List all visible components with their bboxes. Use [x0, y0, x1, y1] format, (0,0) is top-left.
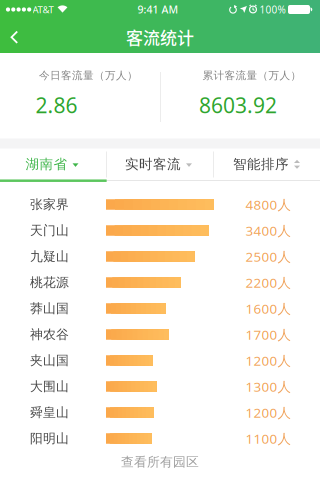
button[interactable]: 阳明山 [0, 425, 320, 451]
staticText: 4800人 [245, 195, 290, 214]
button[interactable]: 天门山 [0, 217, 320, 243]
staticText: 1300人 [245, 377, 290, 396]
button[interactable]: 大围山 [0, 373, 320, 399]
staticText: 2.86 [35, 91, 77, 119]
staticText: 阳明山 [30, 430, 69, 446]
staticText: 9:41 AM [137, 2, 178, 17]
staticText: 3400人 [245, 221, 290, 240]
button[interactable]: 桃花源 [0, 269, 320, 295]
button[interactable]: 湖南省 [0, 148, 105, 180]
button[interactable]: 舜皇山 [0, 399, 320, 425]
staticText: 1200人 [245, 351, 290, 370]
staticText: 2200人 [245, 273, 290, 292]
staticText: 神农谷 [30, 326, 69, 342]
staticText: 莽山国 [30, 300, 69, 316]
staticText: 1700人 [245, 325, 290, 344]
staticText: 九疑山 [30, 248, 69, 264]
button[interactable] [2, 29, 30, 45]
button[interactable]: 查看所有园区 [0, 450, 320, 474]
staticText: 夹山国 [30, 352, 69, 368]
staticText: 实时客流 [125, 156, 181, 173]
staticText: 天门山 [30, 222, 69, 238]
staticText: 1200人 [245, 403, 290, 422]
staticText: 1600人 [245, 299, 290, 318]
button[interactable]: 张家界 [0, 191, 320, 217]
button[interactable]: 实时客流 [105, 148, 211, 180]
staticText: 查看所有园区 [121, 454, 199, 470]
button[interactable]: 九疑山 [0, 243, 320, 269]
staticText: 100% [259, 3, 285, 16]
staticText: 张家界 [30, 196, 69, 212]
staticText: 今日客流量（万人） [39, 69, 138, 82]
staticText: 智能排序 [233, 156, 289, 173]
button[interactable]: 智能排序 [213, 148, 319, 180]
staticText: 湖南省 [25, 156, 67, 173]
staticText: 累计客流量（万人） [202, 69, 301, 82]
staticText: 客流统计 [126, 25, 194, 49]
staticText: 1100人 [245, 429, 290, 448]
staticText: 8603.92 [199, 91, 277, 119]
staticText: 2500人 [245, 247, 290, 266]
button[interactable]: 夹山国 [0, 347, 320, 373]
staticText: 舜皇山 [30, 404, 69, 420]
staticText: 大围山 [30, 378, 69, 394]
button[interactable]: 神农谷 [0, 321, 320, 347]
staticText: 桃花源 [30, 274, 69, 290]
button[interactable]: 莽山国 [0, 295, 320, 321]
staticText: AT&T [32, 3, 53, 16]
